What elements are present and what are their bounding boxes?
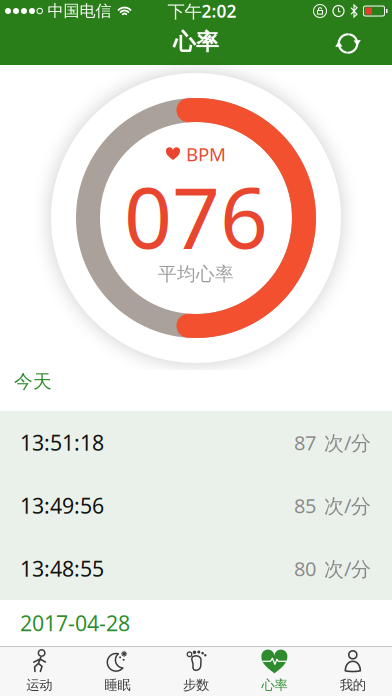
- button[interactable]: 刷新: [335, 30, 392, 56]
- staticText: 下午2:02: [167, 0, 236, 22]
- staticText: 87: [294, 429, 316, 456]
- staticText: 85: [294, 492, 316, 519]
- button[interactable]: 13:49:56: [0, 474, 392, 537]
- staticText: 次/分: [324, 555, 371, 582]
- button[interactable]: 心率: [235, 646, 314, 696]
- staticText: 我的: [340, 677, 366, 693]
- button[interactable]: 13:51:18: [0, 411, 392, 474]
- staticText: 心率: [173, 28, 219, 56]
- staticText: 80: [294, 555, 316, 582]
- staticText: BPM: [186, 142, 226, 166]
- button[interactable]: 13:48:55: [0, 537, 392, 600]
- button[interactable]: 睡眠: [78, 646, 157, 696]
- button[interactable]: 步数: [157, 646, 235, 696]
- button[interactable]: 运动: [0, 646, 78, 696]
- staticText: 运动: [26, 677, 52, 693]
- staticText: 2017-04-28: [20, 609, 130, 637]
- staticText: 次/分: [324, 429, 371, 456]
- staticText: 中国电信: [47, 1, 111, 21]
- staticText: 076: [124, 160, 268, 272]
- staticText: 13:48:55: [20, 554, 104, 583]
- staticText: 睡眠: [105, 677, 131, 693]
- staticText: 13:49:56: [20, 491, 104, 520]
- staticText: 平均心率: [158, 262, 234, 285]
- staticText: 步数: [183, 677, 209, 693]
- staticText: 心率: [261, 677, 287, 693]
- staticText: 次/分: [324, 492, 371, 519]
- staticText: 13:51:18: [20, 428, 104, 457]
- staticText: 今天: [14, 370, 52, 393]
- button[interactable]: 我的: [314, 646, 392, 696]
